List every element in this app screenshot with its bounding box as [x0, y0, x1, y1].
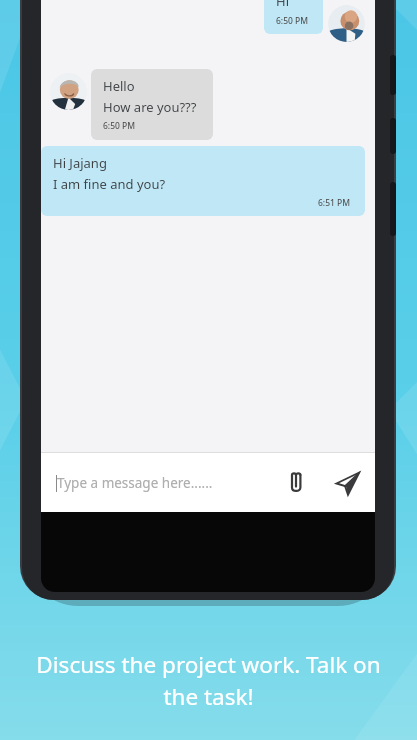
- staticText: Hi: [276, 0, 289, 10]
- button[interactable]: Hi Jajang: [41, 146, 365, 216]
- staticText: Discuss the project work. Talk on the ta…: [18, 649, 399, 712]
- staticText: How are you???: [103, 98, 197, 116]
- staticText: 6:50 PM: [103, 120, 136, 132]
- button[interactable]: Attach file: [278, 465, 314, 501]
- staticText: I am fine and you?: [53, 175, 166, 193]
- button[interactable]: Type a message here......: [56, 474, 278, 492]
- button[interactable]: Send: [328, 464, 366, 502]
- button[interactable]: Hi: [264, 0, 323, 34]
- staticText: 6:51 PM: [318, 197, 351, 209]
- button[interactable]: Hello: [50, 69, 213, 140]
- staticText: 6:50 PM: [276, 15, 309, 27]
- staticText: Type a message here......: [57, 474, 213, 492]
- staticText: Hi Jajang: [53, 154, 107, 172]
- staticText: Hello: [103, 77, 135, 95]
